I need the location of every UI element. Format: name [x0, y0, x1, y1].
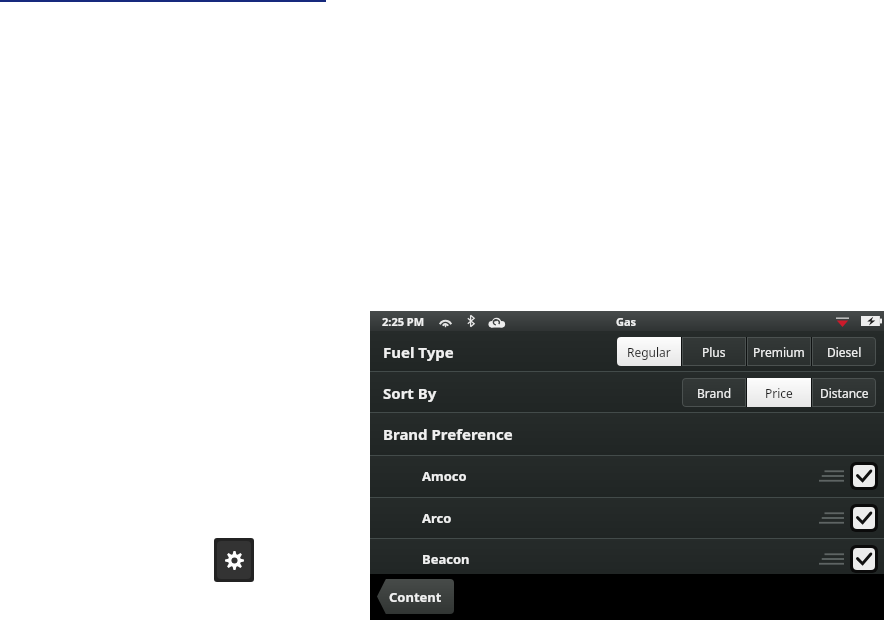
button[interactable]: Plus	[682, 337, 746, 366]
staticText: Brand	[697, 385, 732, 401]
staticText: Sort By	[383, 383, 437, 403]
button[interactable]: Toggle Beacon	[853, 548, 875, 570]
button[interactable]: Reorder Beacon	[819, 548, 844, 570]
button[interactable]: Reorder Amoco	[819, 465, 844, 487]
staticText: Brand Preference	[383, 424, 513, 444]
button[interactable]: Diesel	[812, 337, 876, 366]
button[interactable]: Regular	[617, 337, 681, 366]
staticText: Arco	[422, 509, 452, 527]
staticText: Regular	[627, 344, 671, 360]
button[interactable]: Arco	[370, 497, 884, 538]
button[interactable]: Brand	[682, 378, 746, 407]
staticText: Premium	[753, 344, 805, 360]
button[interactable]: Distance	[812, 378, 876, 407]
button[interactable]: Premium	[747, 337, 811, 366]
staticText: Fuel Type	[383, 342, 454, 362]
staticText: Plus	[702, 344, 726, 360]
button[interactable]: Content	[377, 579, 454, 614]
staticText: Amoco	[422, 467, 467, 485]
staticText: Gas	[616, 314, 637, 329]
staticText: Beacon	[422, 550, 470, 568]
button[interactable]: Amoco	[370, 455, 884, 497]
staticText: Price	[765, 385, 793, 401]
button[interactable]: Price	[747, 378, 811, 407]
button[interactable]: Toggle Arco	[853, 507, 875, 529]
staticText: Diesel	[827, 344, 862, 360]
button[interactable]: Toggle Amoco	[853, 465, 875, 487]
staticText: Distance	[820, 385, 869, 401]
button[interactable]: Beacon	[370, 538, 884, 580]
button[interactable]: Settings	[217, 541, 251, 579]
staticText: Content	[389, 588, 442, 606]
button[interactable]: Reorder Arco	[819, 507, 844, 529]
staticText: 2:25 PM	[382, 314, 425, 329]
